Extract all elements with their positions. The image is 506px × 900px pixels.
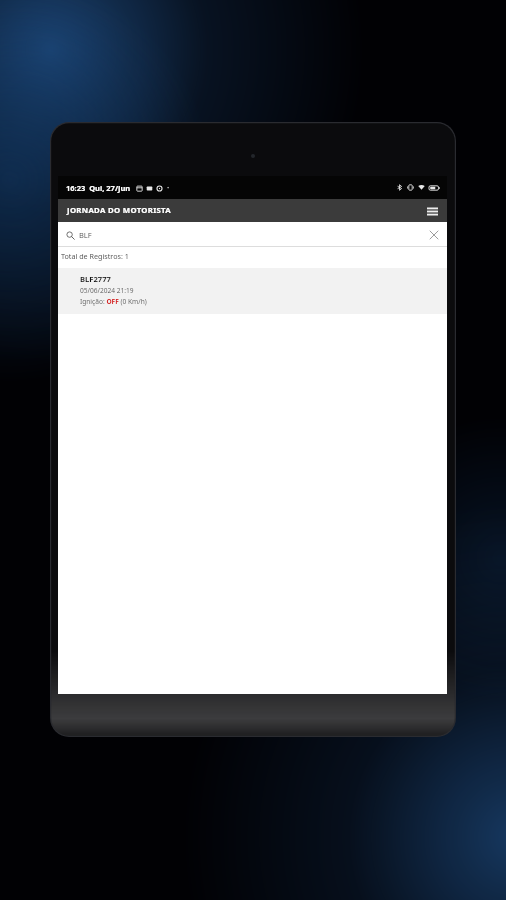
button[interactable]: Limpar busca <box>427 228 441 242</box>
staticText: Total de Registros: 1 <box>61 251 129 261</box>
staticText: 05/06/2024 21:19 <box>80 286 134 295</box>
button[interactable]: BLF2777 <box>58 268 447 314</box>
staticText: 16:23 Qui, 27/Jun <box>66 183 131 193</box>
staticText: JORNADA DO MOTORISTA <box>67 205 172 216</box>
staticText: • <box>167 184 170 192</box>
staticText: Ignição: OFF (0 Km/h) <box>80 297 147 306</box>
staticText: BLF2777 <box>80 274 111 284</box>
button[interactable]: BLF <box>58 222 447 247</box>
staticText: BLF <box>79 230 92 240</box>
button[interactable]: Menu <box>423 202 441 220</box>
